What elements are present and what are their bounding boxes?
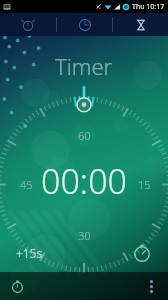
button[interactable]: Alarm xyxy=(0,13,56,36)
staticText: 60 xyxy=(78,128,91,143)
button[interactable]: More options xyxy=(140,275,162,297)
staticText: +15s xyxy=(16,245,43,261)
staticText: Timer xyxy=(55,51,113,81)
button[interactable]: Clock xyxy=(57,13,112,36)
staticText: 30 xyxy=(78,228,91,243)
staticText: Thu 10:17 xyxy=(132,2,165,12)
staticText: 45 xyxy=(20,177,33,192)
staticText: 00:00 xyxy=(41,158,127,204)
button[interactable]: Timer xyxy=(113,13,168,36)
button[interactable]: Start timer xyxy=(130,241,154,265)
button[interactable]: +15s xyxy=(12,243,47,263)
button[interactable]: Timer xyxy=(6,275,28,297)
staticText: 15 xyxy=(138,177,151,192)
